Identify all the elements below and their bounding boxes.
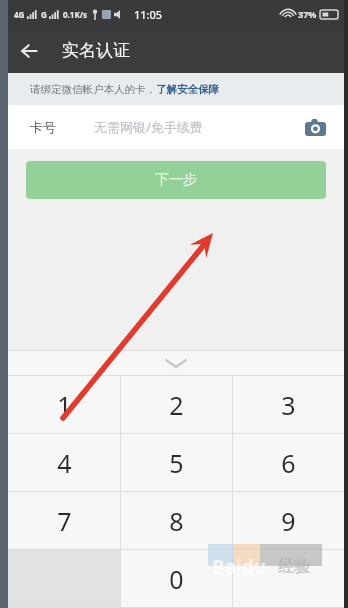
button[interactable]: 了解安全保障: [156, 83, 219, 96]
button[interactable]: 6: [233, 434, 344, 491]
button[interactable]: 8: [121, 492, 232, 549]
staticText: 5: [169, 446, 184, 480]
button[interactable]: [233, 550, 344, 607]
button[interactable]: 2: [121, 376, 232, 433]
staticText: 卡号: [30, 119, 56, 135]
staticText: 8: [169, 504, 184, 538]
staticText: 0: [169, 562, 184, 596]
button[interactable]: 0: [121, 550, 232, 607]
staticText: 7: [57, 504, 72, 538]
staticText: 1: [57, 388, 72, 422]
staticText: 11:05: [134, 7, 163, 22]
staticText: 了解安全保障: [156, 83, 219, 96]
button[interactable]: 3: [233, 376, 344, 433]
staticText: 经验: [278, 557, 310, 577]
button[interactable]: 7: [8, 492, 120, 549]
staticText: 无需网银/免手续费: [94, 118, 203, 136]
button[interactable]: 4: [8, 434, 120, 491]
staticText: G: [41, 9, 47, 20]
button[interactable]: Hide keyboard: [8, 351, 344, 375]
button[interactable]: 下一步: [26, 161, 326, 199]
staticText: 实名认证: [62, 40, 130, 61]
staticText: Baidu: [212, 554, 267, 580]
staticText: 4: [57, 446, 72, 480]
button[interactable]: Scan card: [300, 112, 330, 142]
staticText: 6: [281, 446, 296, 480]
staticText: 3: [281, 388, 296, 422]
button[interactable]: 5: [121, 434, 232, 491]
staticText: 4G: [14, 9, 25, 20]
staticText: 2: [169, 388, 184, 422]
button[interactable]: Back: [8, 30, 50, 72]
staticText: 下一步: [155, 171, 197, 189]
button[interactable]: 1: [8, 376, 120, 433]
staticText: 37%: [298, 8, 317, 20]
staticText: 9: [281, 504, 296, 538]
button[interactable]: 9: [233, 492, 344, 549]
staticText: 0.1K/s: [63, 9, 88, 20]
staticText: 请绑定微信帐户本人的卡，: [30, 83, 156, 96]
